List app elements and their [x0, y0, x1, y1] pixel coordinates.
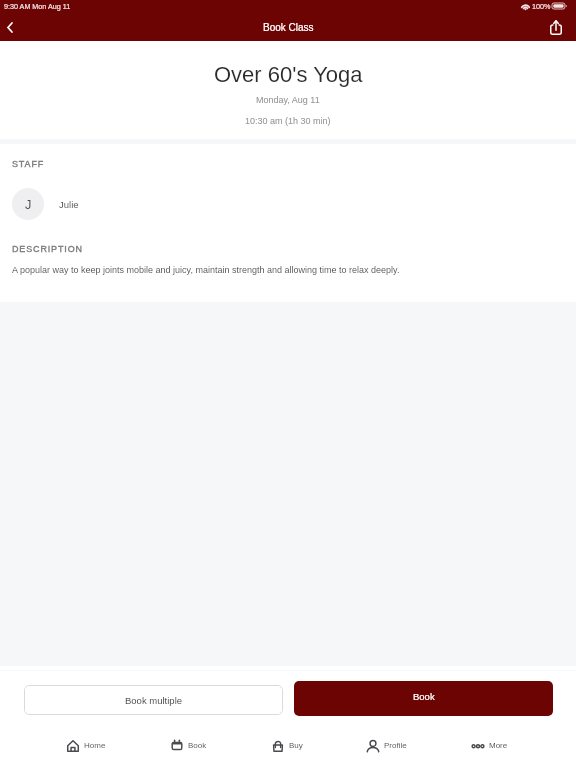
staticText: Book Class	[263, 22, 314, 33]
staticText: STAFF	[12, 159, 45, 169]
staticText: Book multiple	[125, 695, 183, 706]
staticText: Monday, Aug 11	[256, 95, 320, 105]
staticText: Book	[188, 741, 207, 750]
button[interactable]: Book	[294, 681, 553, 716]
staticText: 9:30 AM Mon Aug 11	[4, 2, 71, 10]
button[interactable]: Back	[0, 13, 20, 41]
staticText: Home	[84, 741, 106, 750]
staticText: A popular way to keep joints mobile and …	[12, 265, 400, 275]
staticText: J	[25, 197, 32, 211]
staticText: Over 60's Yoga	[214, 62, 363, 87]
button[interactable]: Book multiple	[24, 685, 283, 715]
staticText: Profile	[384, 741, 407, 750]
staticText: 100%	[532, 2, 551, 10]
button[interactable]: Home	[67, 731, 106, 760]
staticText: More	[489, 741, 508, 750]
staticText: Buy	[289, 741, 303, 750]
staticText: Book	[413, 691, 435, 702]
button[interactable]: Book	[171, 731, 207, 760]
staticText: Julie	[59, 199, 79, 210]
button[interactable]: Share	[544, 13, 576, 41]
button[interactable]: Profile	[367, 731, 407, 760]
button[interactable]: J	[0, 187, 576, 221]
button[interactable]: Buy	[272, 731, 303, 760]
staticText: 10:30 am (1h 30 min)	[245, 116, 331, 126]
button[interactable]: More	[472, 731, 508, 760]
staticText: DESCRIPTION	[12, 244, 83, 254]
